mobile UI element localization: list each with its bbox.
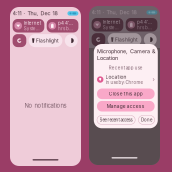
- button[interactable]: Flashlight: [108, 33, 141, 46]
- button[interactable]: Flashlight: [29, 34, 62, 47]
- button[interactable]: Contrast: [65, 34, 78, 47]
- button[interactable]: Contrast: [144, 33, 157, 46]
- staticText: See recent access: [100, 117, 133, 122]
- button[interactable]: Location: [97, 70, 155, 85]
- staticText: In use by: Chrome: [106, 80, 143, 85]
- staticText: p4 4'20': [58, 20, 75, 26]
- staticText: Flashlight: [36, 38, 59, 44]
- staticText: Manage access: [107, 103, 145, 109]
- staticText: Recent app use: [109, 65, 143, 70]
- staticText: Systems: [103, 25, 120, 30]
- button[interactable]: Close this app: [97, 88, 155, 99]
- staticText: 4:11 · Thu, Dec 18: [13, 10, 58, 17]
- staticText: Microphone, Camera &: [97, 48, 156, 55]
- button[interactable]: Done: [138, 115, 155, 124]
- button[interactable]: Auto-rotate: [92, 33, 105, 46]
- button[interactable]: Auto-rotate: [13, 34, 26, 47]
- staticText: 4:11 · Thu, Dec 18: [92, 9, 137, 16]
- staticText: Internet: [24, 20, 41, 26]
- staticText: Systems: [24, 26, 41, 31]
- button[interactable]: p4 4'20': [126, 18, 157, 31]
- button[interactable]: p4 4'20': [47, 19, 78, 32]
- staticText: p4 4'20': [137, 19, 154, 25]
- button[interactable]: Manage access: [97, 101, 155, 111]
- staticText: No notifications: [24, 102, 66, 109]
- staticText: hrs battery: [137, 25, 154, 30]
- staticText: Internet: [103, 19, 120, 25]
- staticText: Done: [141, 117, 152, 122]
- staticText: Location: [106, 74, 127, 80]
- staticText: Location: [97, 55, 118, 61]
- staticText: hrs battery: [58, 26, 75, 31]
- staticText: Close this app: [109, 91, 143, 97]
- staticText: Flashlight: [115, 37, 138, 43]
- button[interactable]: See recent access: [97, 115, 135, 124]
- button[interactable]: Internet: [92, 18, 123, 31]
- button[interactable]: Internet: [13, 19, 44, 32]
